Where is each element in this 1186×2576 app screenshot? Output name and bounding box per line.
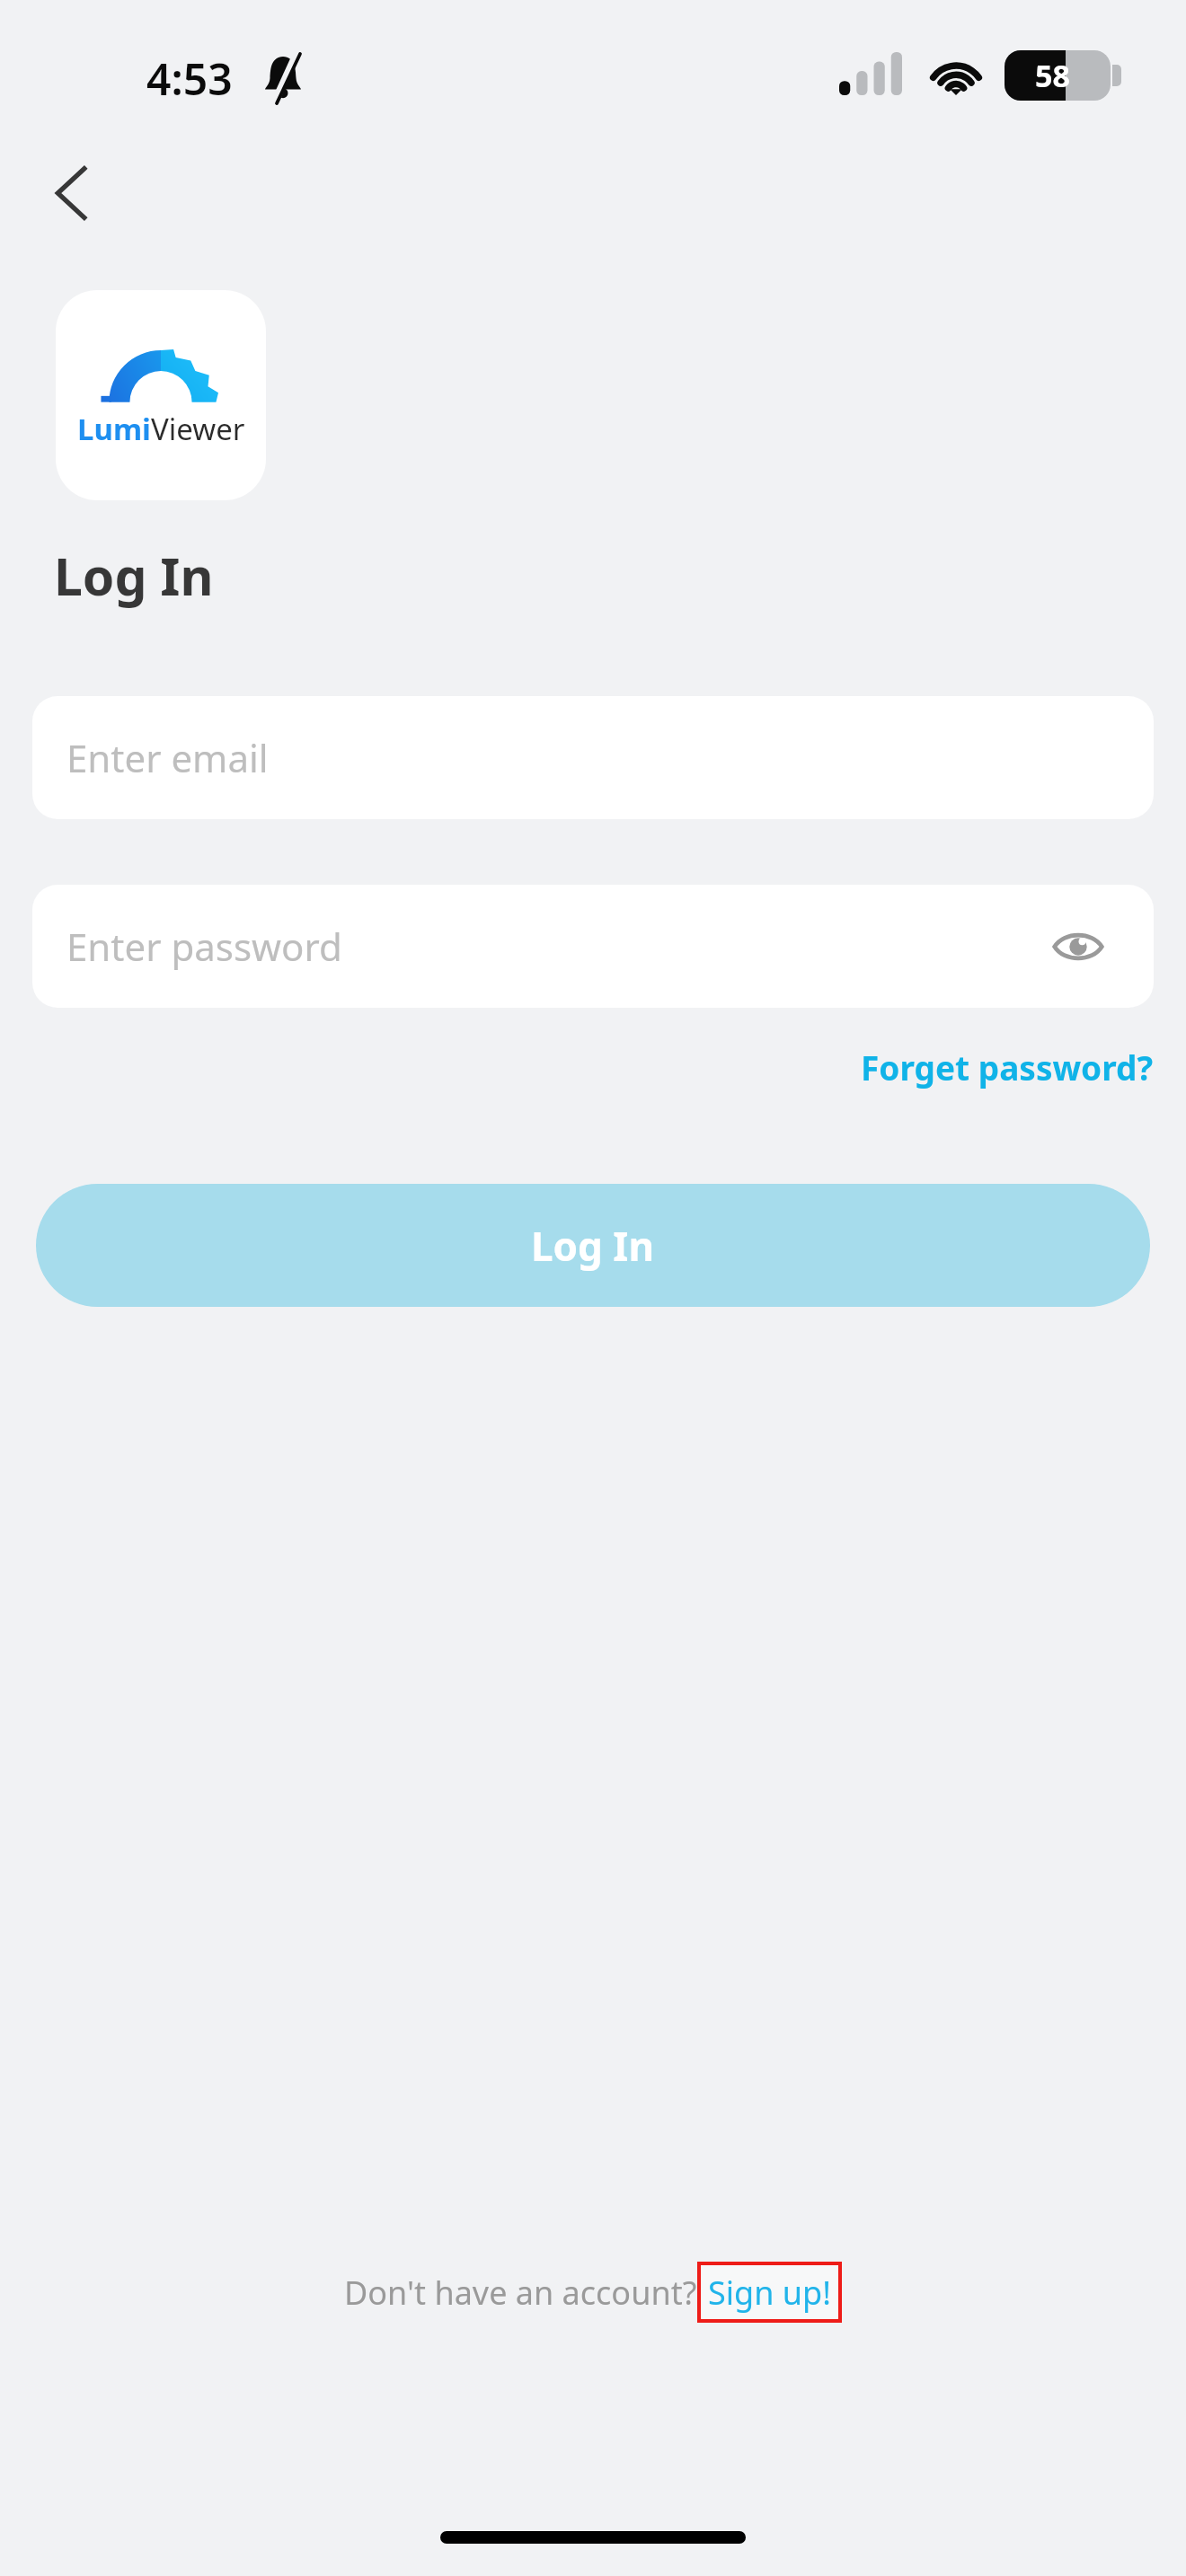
button[interactable]: Sign up! <box>697 2262 842 2323</box>
staticText: Enter password <box>66 921 342 972</box>
button[interactable]: Forget password? <box>836 1028 1154 1106</box>
staticText: Viewer <box>151 409 245 449</box>
staticText: 58 <box>1035 55 1070 96</box>
staticText: 4:53 <box>146 49 233 108</box>
staticText: Log In <box>54 541 214 611</box>
button[interactable]: Back <box>36 157 108 229</box>
staticText: Enter email <box>66 732 269 783</box>
button[interactable]: Enter email <box>32 696 1154 819</box>
button[interactable]: Enter password <box>32 885 1154 1008</box>
staticText: Lumi <box>77 409 151 449</box>
staticText: Don't have an account? <box>344 2271 697 2315</box>
button[interactable]: Show password <box>1044 913 1112 981</box>
staticText: Sign up! <box>708 2271 831 2315</box>
staticText: Forget password? <box>861 1045 1154 1090</box>
button[interactable]: Log In <box>36 1184 1150 1307</box>
staticText: Log In <box>531 1219 655 1273</box>
